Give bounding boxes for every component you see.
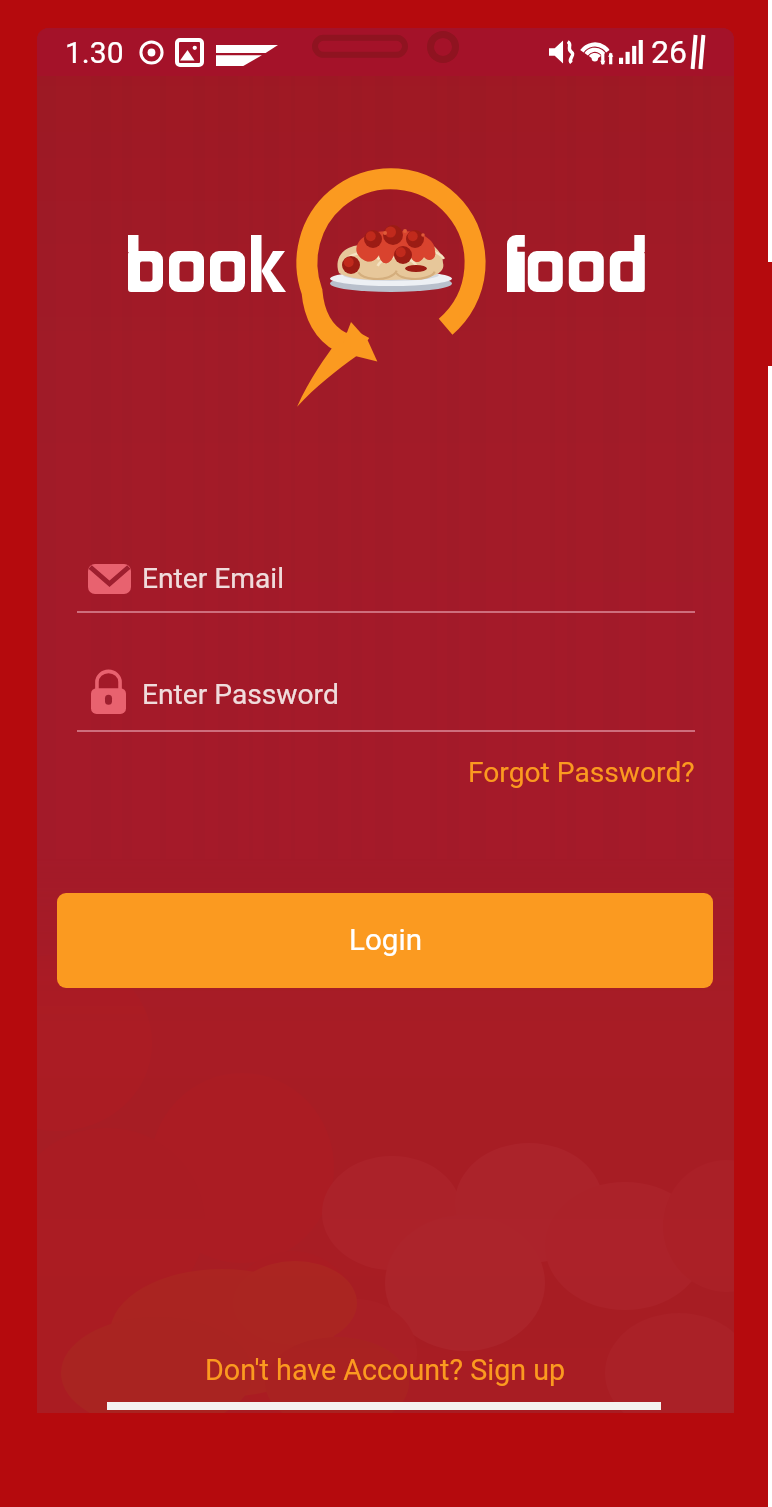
staticText: Forgot Password?: [468, 756, 695, 789]
staticText: Login: [349, 923, 422, 958]
staticText: Enter Password: [142, 678, 339, 711]
button[interactable]: Login: [57, 893, 713, 988]
staticText: Don't have Account? Sign up: [205, 1353, 566, 1387]
button[interactable]: Forgot Password?: [464, 752, 699, 793]
staticText: 26: [651, 33, 687, 71]
button[interactable]: Don't have Account? Sign up: [195, 1349, 576, 1391]
staticText: 1.30: [65, 35, 124, 70]
staticText: Enter Email: [142, 562, 285, 595]
